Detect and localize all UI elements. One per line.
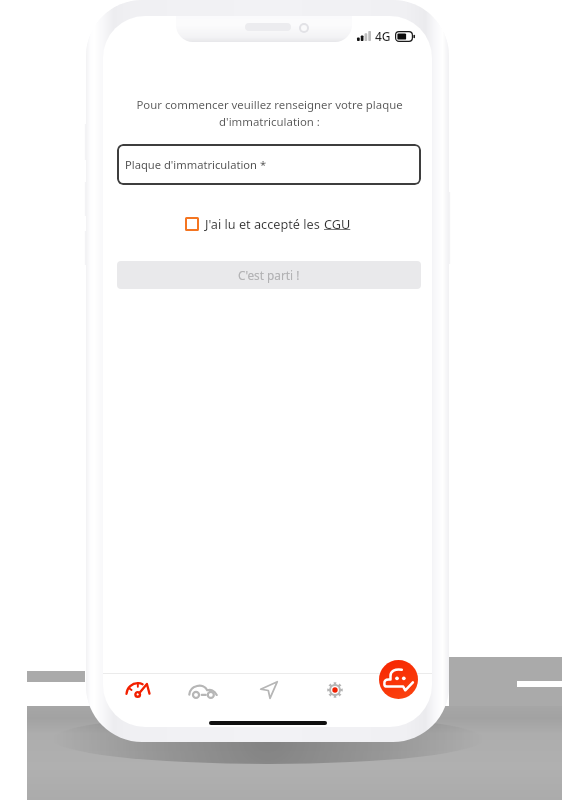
button[interactable]: J'ai lu et accepté les [185, 215, 351, 232]
button[interactable]: C'est parti ! [117, 261, 421, 289]
button[interactable]: Mon véhicule [170, 670, 236, 710]
staticText: CGU [324, 215, 351, 232]
staticText: Pour commencer veuillez renseigner votre… [131, 97, 408, 130]
staticText: J'ai lu et accepté les [205, 215, 324, 232]
staticText: Plaque d'immatriculation * [125, 157, 267, 172]
staticText: C'est parti ! [238, 267, 300, 283]
button[interactable]: Navigation [236, 670, 302, 710]
staticText: 4G [375, 28, 391, 44]
button[interactable]: Plaque d'immatriculation * [117, 144, 421, 185]
button[interactable]: Assistance [379, 660, 418, 699]
button[interactable]: Réglages [302, 670, 368, 710]
button[interactable]: Tableau de bord [104, 670, 170, 710]
